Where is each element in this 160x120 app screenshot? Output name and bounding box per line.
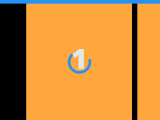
staticText: 1 — [71, 40, 87, 77]
